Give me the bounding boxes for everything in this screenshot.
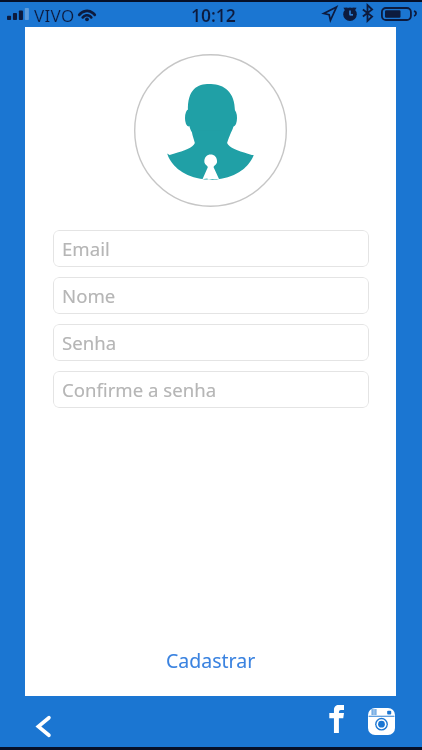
staticText: Nome	[62, 283, 116, 308]
button[interactable]: Instagram	[366, 706, 397, 737]
button[interactable]: Facebook	[321, 704, 351, 734]
staticText: 10:12	[191, 3, 236, 27]
button[interactable]: Nome	[53, 277, 369, 314]
button[interactable]: Confirme a senha	[53, 371, 369, 408]
staticText: Confirme a senha	[62, 377, 217, 402]
button[interactable]: Cadastrar	[25, 635, 396, 685]
staticText: Cadastrar	[166, 647, 256, 674]
staticText: VIVO	[34, 4, 75, 27]
button[interactable]: Email	[53, 230, 369, 267]
button[interactable]: Senha	[53, 324, 369, 361]
staticText: Senha	[62, 330, 117, 355]
staticText: Email	[62, 236, 110, 261]
button[interactable]: Back	[26, 709, 60, 743]
